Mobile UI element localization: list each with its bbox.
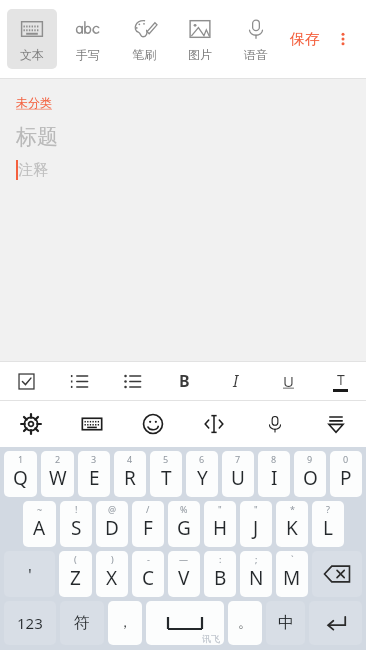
button[interactable]: 笔刷 [119,9,169,69]
staticText: 标题 [16,124,58,150]
staticText: F [143,515,153,541]
button[interactable]: Period [228,601,262,645]
button[interactable]: - [132,551,164,597]
staticText: O [303,465,318,491]
staticText: 保存 [290,30,320,49]
staticText: ~ [37,503,43,515]
staticText: 未分类 [16,95,52,110]
staticText: C [142,565,155,591]
button[interactable]: ! [60,501,92,547]
button[interactable]: Comma [108,601,142,645]
staticText: M [283,565,301,591]
staticText: @ [108,503,117,515]
button[interactable]: Keyboard layout [61,401,122,447]
button[interactable]: ? [312,501,344,547]
button[interactable]: 0 [330,451,362,497]
button[interactable]: Bulleted list [106,362,158,400]
staticText: B [214,565,227,591]
button[interactable]: Space [146,601,224,645]
staticText: K [286,515,298,541]
button[interactable]: 文本 [7,9,57,69]
staticText: : [219,553,222,565]
staticText: Z [70,565,81,591]
button[interactable]: Cursor [183,401,244,447]
button[interactable]: 语音 [231,9,281,69]
staticText: ? [326,503,330,515]
staticText: 。 [238,614,252,632]
button[interactable]: 保存 [284,22,326,57]
button[interactable]: 图片 [175,9,225,69]
button[interactable]: 1 [4,451,37,497]
button[interactable]: ` [276,551,308,597]
button[interactable]: — [168,551,200,597]
button[interactable]: / [132,501,164,547]
button[interactable]: " [204,501,236,547]
button[interactable]: Emoji [122,401,183,447]
button[interactable]: " [240,501,272,547]
staticText: X [106,565,118,591]
button[interactable]: Italic [210,362,262,400]
button[interactable]: 4 [114,451,146,497]
button[interactable]: Hide keyboard [305,401,366,447]
staticText: 注释 [18,161,48,180]
button[interactable]: 7 [222,451,254,497]
staticText: 符 [74,613,90,633]
button[interactable]: 9 [294,451,326,497]
staticText: ! [75,503,78,515]
button[interactable]: Numbers [4,601,56,645]
staticText: 笔刷 [132,47,156,62]
staticText: Y [197,465,208,491]
button[interactable]: Settings [0,401,61,447]
button[interactable]: @ [96,501,128,547]
staticText: 7 [235,453,241,465]
staticText: G [177,515,191,541]
button[interactable]: Backspace [312,551,362,597]
button[interactable]: : [204,551,236,597]
staticText: S [71,515,82,541]
button[interactable]: Voice input [244,401,305,447]
button[interactable]: % [168,501,200,547]
staticText: 图片 [188,47,212,62]
staticText: P [340,465,352,491]
staticText: E [89,465,100,491]
staticText: " [254,503,258,515]
staticText: 2 [55,453,61,465]
button[interactable]: Enter [309,601,362,645]
button[interactable]: 8 [258,451,290,497]
button[interactable]: Numbered list [53,362,106,400]
staticText: U [231,465,245,491]
button[interactable]: Symbols [60,601,104,645]
staticText: - [147,553,150,565]
button[interactable]: 6 [186,451,218,497]
button[interactable]: ; [240,551,272,597]
button[interactable]: 3 [78,451,110,497]
staticText: " [218,503,222,515]
staticText: I [271,465,278,491]
staticText: 手写 [76,47,100,62]
button[interactable]: 2 [41,451,74,497]
staticText: I [233,370,239,392]
button[interactable]: Underline [262,362,314,400]
button[interactable]: 手写 [63,9,113,69]
button[interactable]: 未分类 [16,93,52,112]
button[interactable]: ( [59,551,92,597]
staticText: ' [28,563,32,586]
button[interactable]: ~ [23,501,56,547]
button[interactable]: Chinese input [266,601,305,645]
button[interactable]: 5 [150,451,182,497]
staticText: — [179,553,189,565]
button[interactable]: Apostrophe [4,551,55,597]
button[interactable]: More options [326,22,360,56]
button[interactable]: Checklist [0,362,53,400]
staticText: 3 [91,453,97,465]
staticText: 5 [163,453,169,465]
staticText: T [161,465,172,491]
button[interactable]: Bold [158,362,210,400]
staticText: W [49,465,67,491]
button[interactable]: ) [96,551,128,597]
staticText: 123 [17,613,43,633]
staticText: 语音 [244,47,268,62]
button[interactable]: Text color [314,362,366,400]
staticText: Q [13,465,28,491]
button[interactable]: * [276,501,308,547]
